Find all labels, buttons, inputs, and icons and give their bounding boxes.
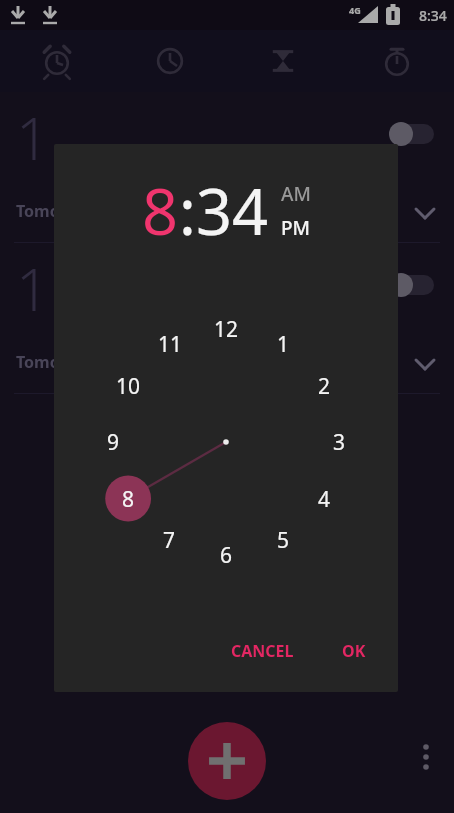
button[interactable]: 1 xyxy=(0,243,454,393)
staticText: 34 xyxy=(196,168,269,254)
button[interactable]: OK xyxy=(332,632,376,670)
button[interactable]: 6 xyxy=(206,540,246,570)
staticText: PM xyxy=(281,215,311,241)
staticText: 1 xyxy=(16,249,50,328)
staticText: 3 xyxy=(333,428,346,457)
button[interactable]: Clock xyxy=(113,30,226,92)
button[interactable]: 1 xyxy=(0,92,454,242)
staticText: AM xyxy=(281,181,311,207)
staticText: 9 xyxy=(107,428,120,457)
button[interactable]: CANCEL xyxy=(221,632,304,670)
button[interactable]: 8 xyxy=(142,168,179,254)
button[interactable]: 5 xyxy=(263,525,303,555)
staticText: 8 xyxy=(122,485,135,514)
staticText: 8:34 xyxy=(419,6,447,25)
staticText: CANCEL xyxy=(231,640,294,662)
staticText: 4 xyxy=(318,485,331,514)
staticText: OK xyxy=(342,640,366,662)
button[interactable]: 10 xyxy=(108,371,148,401)
button[interactable]: 12 xyxy=(69,285,383,599)
button[interactable]: 9 xyxy=(93,427,133,457)
staticText: 10 xyxy=(116,372,141,401)
staticText: 12 xyxy=(214,315,239,344)
staticText: 11 xyxy=(158,330,183,359)
button[interactable]: Timer xyxy=(226,30,340,92)
staticText: 1 xyxy=(277,330,290,359)
button[interactable]: Expand alarm xyxy=(408,196,442,230)
button[interactable]: AM xyxy=(281,181,311,207)
staticText: 1 xyxy=(16,98,50,177)
staticText: 2 xyxy=(318,372,331,401)
button[interactable]: PM xyxy=(281,215,311,241)
button[interactable]: More options xyxy=(406,737,446,777)
button[interactable]: 12 xyxy=(206,314,246,344)
button[interactable]: 8 xyxy=(108,484,148,514)
staticText: 6 xyxy=(220,541,233,570)
staticText: Tomorrow xyxy=(16,200,98,222)
staticText: 5 xyxy=(277,526,290,555)
button[interactable]: 1 xyxy=(263,329,303,359)
button[interactable]: Expand alarm xyxy=(408,347,442,381)
staticText: 8 xyxy=(142,168,179,254)
button[interactable]: 3 xyxy=(319,427,359,457)
button[interactable]: Toggle alarm xyxy=(386,269,440,301)
staticText: 4G xyxy=(349,4,361,16)
staticText: Tomorrow xyxy=(16,351,98,373)
button[interactable]: Add alarm xyxy=(188,722,266,800)
button[interactable]: 7 xyxy=(149,525,189,555)
button[interactable]: Stopwatch xyxy=(340,30,454,92)
staticText: 7 xyxy=(163,526,176,555)
button[interactable]: 34 xyxy=(196,168,269,254)
button[interactable]: Alarm xyxy=(0,30,113,92)
button[interactable]: 11 xyxy=(150,329,190,359)
button[interactable]: 4 xyxy=(304,484,344,514)
staticText: : xyxy=(179,168,196,254)
button[interactable]: Toggle alarm xyxy=(386,118,440,150)
button[interactable]: 2 xyxy=(304,371,344,401)
